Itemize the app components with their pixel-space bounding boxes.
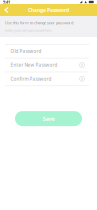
button[interactable]: Back xyxy=(0,4,12,16)
staticText: Enter New Password xyxy=(11,62,58,68)
staticText: 9:41 xyxy=(3,0,10,5)
staticText: Change Password xyxy=(28,7,69,13)
button[interactable]: Show password xyxy=(78,74,86,83)
staticText: Enter your old password first. xyxy=(5,28,52,33)
button[interactable]: Save xyxy=(15,111,82,126)
staticText: Use this form to change your password. xyxy=(5,20,74,26)
staticText: Confirm Password xyxy=(11,76,52,82)
staticText: Save xyxy=(42,115,54,122)
staticText: Old Password xyxy=(11,48,42,54)
button[interactable]: Show password xyxy=(78,61,86,69)
